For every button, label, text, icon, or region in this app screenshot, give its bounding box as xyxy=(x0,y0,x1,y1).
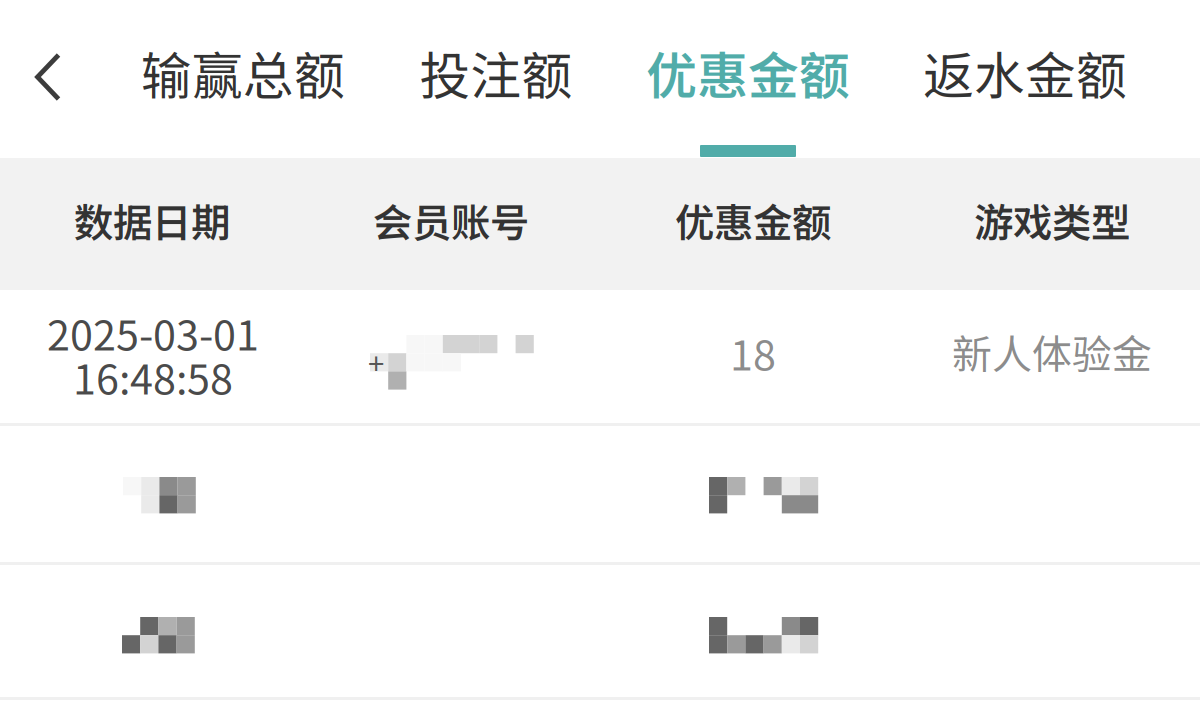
staticText: 优惠金额 xyxy=(675,191,831,248)
button[interactable]: Redacted record xyxy=(0,426,1200,562)
staticText: + xyxy=(368,340,384,382)
staticText: 会员账号 xyxy=(373,191,529,248)
button[interactable]: Redacted record xyxy=(0,565,1200,697)
button[interactable]: Back xyxy=(2,25,94,129)
staticText: 投注额 xyxy=(419,36,572,109)
staticText: 优惠金额 xyxy=(646,36,850,109)
staticText: 数据日期 xyxy=(74,191,230,248)
button[interactable]: 输赢总额 xyxy=(117,0,369,158)
staticText: 新人体验金 xyxy=(952,322,1152,380)
staticText: 游戏类型 xyxy=(974,191,1130,248)
button[interactable]: 2025-03-01 xyxy=(0,290,1200,423)
staticText: 18 xyxy=(730,323,776,382)
button[interactable]: 投注额 xyxy=(370,0,622,158)
staticText: 2025-03-01 xyxy=(47,303,259,362)
staticText: 16:48:58 xyxy=(73,346,233,406)
staticText: 输赢总额 xyxy=(141,36,345,109)
staticText: 返水金额 xyxy=(923,36,1127,109)
button[interactable]: 优惠金额 xyxy=(622,0,874,158)
button[interactable]: 返水金额 xyxy=(899,0,1151,158)
